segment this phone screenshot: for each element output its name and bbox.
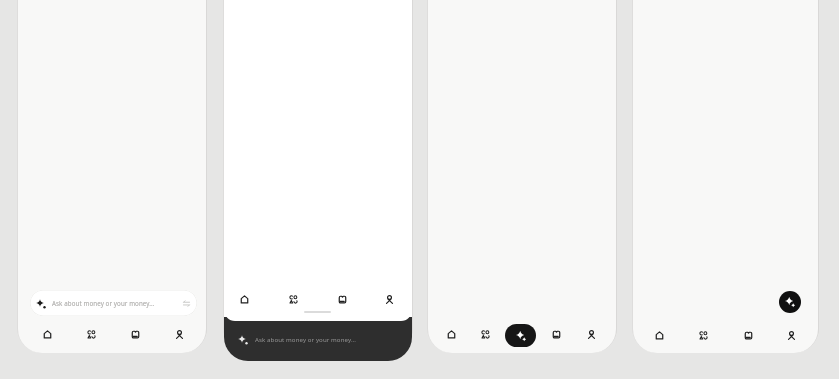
button[interactable] [481,330,490,339]
button[interactable] [699,331,708,340]
button[interactable] [289,295,298,304]
button[interactable] [552,330,561,339]
button[interactable] [385,295,394,304]
staticText: Ask about money or your money... [255,335,357,343]
button[interactable] [447,330,456,339]
button[interactable] [787,331,796,340]
button[interactable] [87,330,96,339]
button[interactable] [43,330,52,339]
button[interactable] [175,330,184,339]
button[interactable] [779,291,801,313]
button[interactable] [505,324,536,347]
button[interactable] [240,295,249,304]
button[interactable] [338,295,347,304]
button[interactable] [587,330,596,339]
button[interactable] [182,299,191,308]
button[interactable]: Ask about money or your money... [30,290,197,316]
staticText: Ask about money or your money... [52,299,155,307]
button[interactable] [131,330,140,339]
button[interactable]: Ask about money or your money... [224,317,412,361]
button[interactable] [655,331,664,340]
button[interactable] [744,331,753,340]
